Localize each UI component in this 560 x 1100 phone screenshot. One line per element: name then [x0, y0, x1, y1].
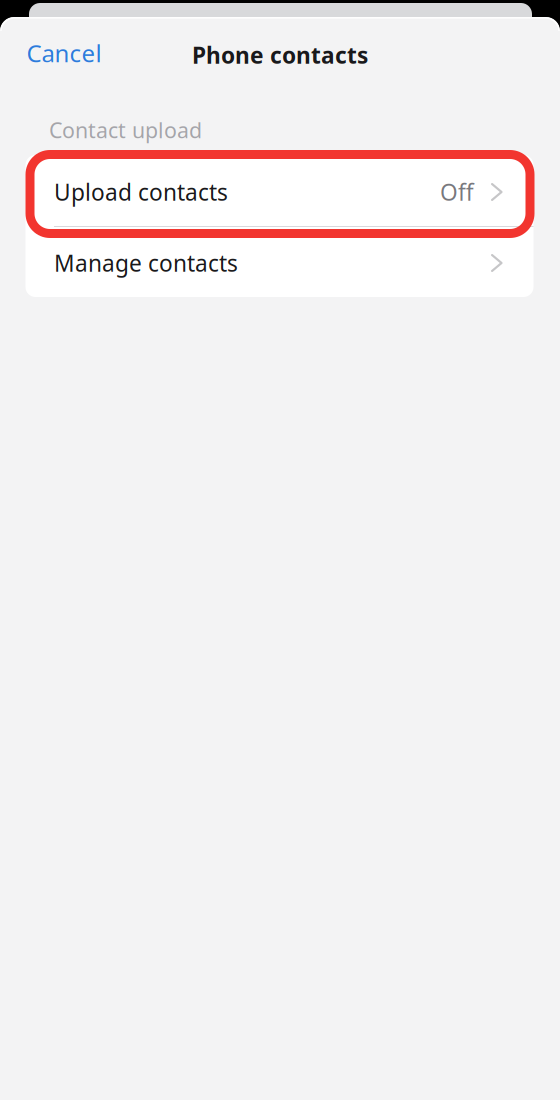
button[interactable]: Manage contacts [25, 226, 533, 297]
staticText: Cancel [26, 37, 101, 69]
staticText: Manage contacts [54, 248, 238, 278]
staticText: Contact upload [49, 116, 202, 144]
staticText: Phone contacts [192, 40, 368, 70]
button[interactable]: Cancel [26, 28, 136, 78]
staticText: Upload contacts [54, 177, 228, 207]
button[interactable]: Upload contacts [25, 155, 533, 226]
staticText: Off [440, 177, 474, 207]
